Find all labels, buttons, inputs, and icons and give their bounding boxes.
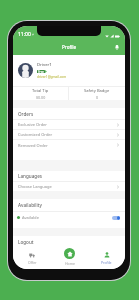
button[interactable]: Offer (13, 247, 51, 269)
staticText: $0.00 (36, 95, 46, 100)
button[interactable]: Customized Order (13, 129, 125, 139)
staticText: Orders (18, 111, 34, 117)
staticText: Availability (18, 202, 42, 208)
staticText: Logout (18, 239, 34, 245)
staticText: Choose Language (18, 184, 52, 189)
staticText: driver1@gmail.com (37, 75, 67, 79)
button[interactable]: Choose Language (13, 181, 125, 191)
button[interactable]: Home (64, 248, 75, 259)
button[interactable]: Exclusive Order (13, 119, 125, 129)
staticText: Customized Order (18, 132, 53, 137)
staticText: Profile (62, 44, 77, 50)
staticText: Languages (18, 173, 43, 179)
button[interactable]: Safety Badge (69, 87, 125, 100)
staticText: Profile (101, 260, 112, 265)
button[interactable]: Available (13, 211, 125, 228)
staticText: Total Tip (32, 88, 49, 94)
staticText: Offer (28, 260, 37, 265)
button[interactable]: Removed Order (13, 139, 125, 160)
staticText: Home (65, 261, 75, 266)
staticText: Available (22, 215, 39, 220)
staticText: 11:00 (18, 31, 31, 38)
staticText: Safety Badge (84, 88, 110, 94)
button[interactable]: Notifications (112, 42, 122, 52)
staticText: 0 (96, 95, 99, 100)
staticText: Free (38, 70, 44, 73)
staticText: Removed Order (18, 143, 48, 148)
staticText: Driver1 (37, 62, 52, 68)
staticText: Exclusive Order (18, 122, 48, 127)
button[interactable]: Total Tip (13, 87, 68, 100)
button[interactable]: Profile (88, 247, 125, 269)
